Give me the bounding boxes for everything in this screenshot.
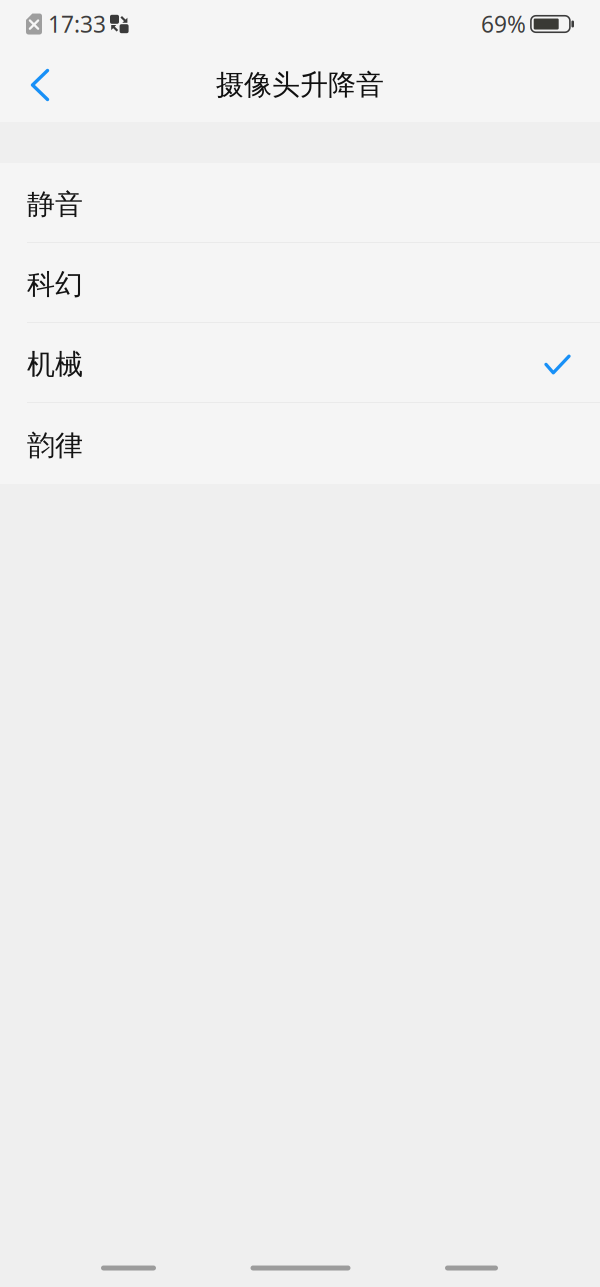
button[interactable]: Home (250, 1265, 350, 1270)
button[interactable]: Back (101, 1265, 156, 1270)
staticText: 17:33 (48, 9, 106, 39)
button[interactable]: 静音 (0, 163, 600, 243)
staticText: 科幻 (27, 267, 83, 302)
staticText: 摄像头升降音 (216, 68, 384, 102)
button[interactable]: Recent apps (445, 1265, 498, 1270)
staticText: 韵律 (27, 428, 83, 463)
staticText: 机械 (27, 347, 83, 382)
button[interactable]: 韵律 (0, 403, 600, 484)
button[interactable]: 科幻 (0, 243, 600, 323)
staticText: 69% (481, 9, 526, 39)
button[interactable]: Back (12, 57, 68, 113)
button[interactable]: 机械 (0, 323, 600, 403)
staticText: 静音 (27, 187, 83, 222)
